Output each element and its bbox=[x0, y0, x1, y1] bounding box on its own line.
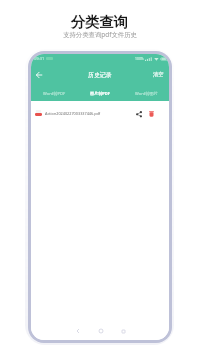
staticText: 清空 bbox=[153, 71, 164, 78]
button[interactable]: Back bbox=[66, 325, 89, 337]
staticText: Action20240227003337446.pdf bbox=[45, 111, 101, 116]
button[interactable]: Word转图片 bbox=[123, 86, 169, 101]
staticText: 09:31 bbox=[34, 56, 45, 61]
button[interactable]: 图片转PDF bbox=[77, 86, 123, 101]
staticText: 历史记录 bbox=[88, 71, 112, 78]
staticText: 支持分类查询pdf文件历史 bbox=[63, 30, 137, 39]
staticText: Word转PDF bbox=[43, 91, 66, 97]
button[interactable]: Recents bbox=[112, 325, 135, 337]
button[interactable]: Word转PDF bbox=[31, 86, 77, 101]
button[interactable]: Delete bbox=[147, 109, 156, 118]
button[interactable]: Home bbox=[89, 325, 112, 337]
staticText: 图片转PDF bbox=[90, 91, 111, 97]
button[interactable]: 清空 bbox=[148, 66, 169, 83]
button[interactable]: Share bbox=[134, 109, 143, 118]
staticText: 分类查询 bbox=[71, 13, 128, 31]
staticText: Word转图片 bbox=[135, 91, 158, 97]
button[interactable]: Back bbox=[31, 67, 47, 83]
staticText: 100% bbox=[135, 56, 144, 61]
button[interactable]: Action20240227003337446.pdf bbox=[31, 106, 169, 120]
